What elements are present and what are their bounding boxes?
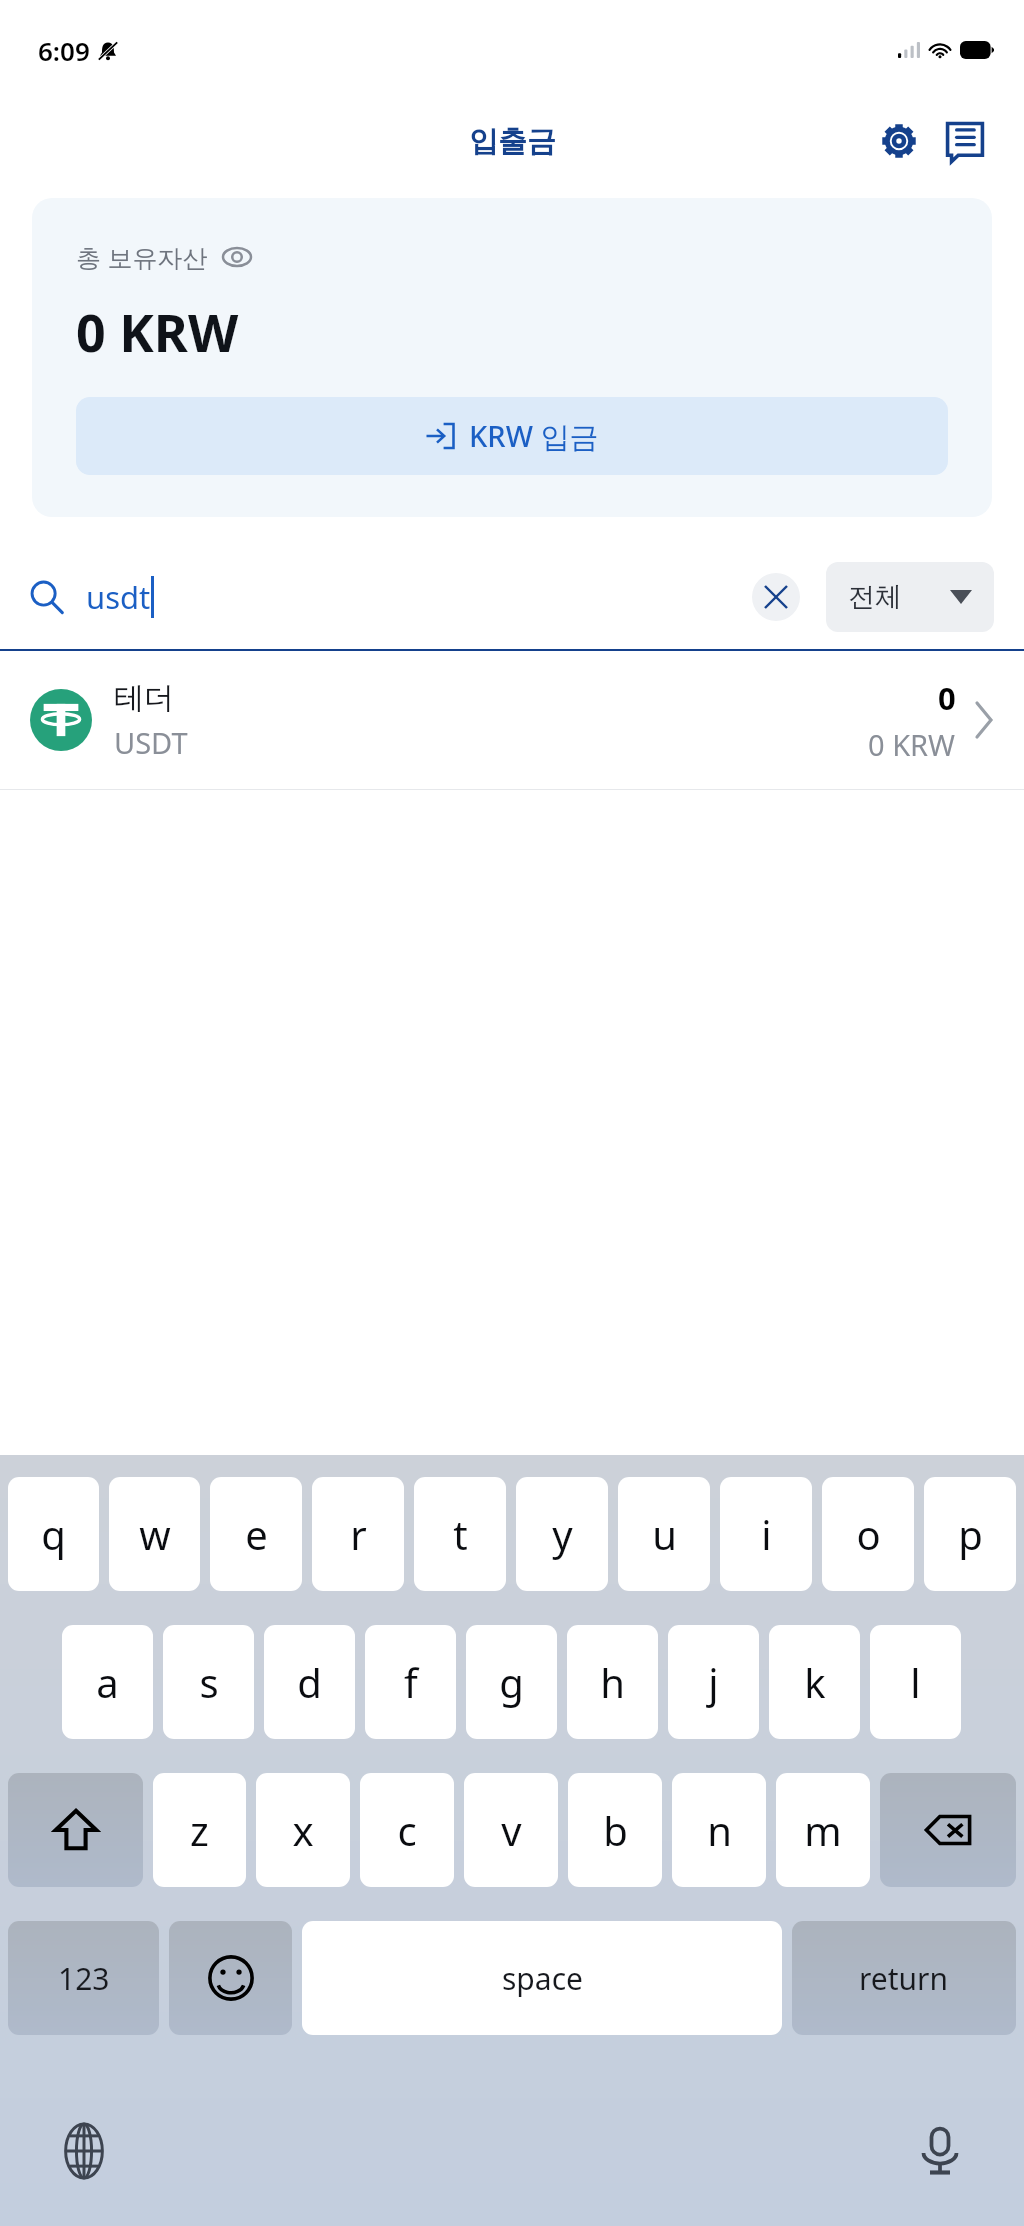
button[interactable]: Dictation [900, 2111, 980, 2191]
button[interactable]: Settings [868, 110, 930, 172]
staticText: w [139, 1507, 171, 1561]
button[interactable]: f [365, 1625, 456, 1739]
button[interactable]: Toggle balance visibility [220, 240, 254, 274]
button[interactable]: u [618, 1477, 710, 1591]
button[interactable]: i [720, 1477, 812, 1591]
staticText: 0 KRW [868, 725, 956, 764]
staticText: a [96, 1655, 119, 1709]
button[interactable]: 전체 [826, 562, 994, 632]
button[interactable]: c [360, 1773, 454, 1887]
staticText: 6:09 [38, 33, 90, 68]
button[interactable]: usdt [30, 545, 752, 649]
button[interactable]: space [302, 1921, 782, 2035]
staticText: 123 [58, 1958, 110, 1999]
staticText: q [41, 1507, 66, 1561]
staticText: v [501, 1803, 522, 1857]
button[interactable]: z [153, 1773, 246, 1887]
staticText: o [856, 1507, 881, 1561]
button[interactable]: h [567, 1625, 658, 1739]
button[interactable]: 123 [8, 1921, 159, 2035]
button[interactable]: j [668, 1625, 759, 1739]
button[interactable]: l [870, 1625, 961, 1739]
staticText: f [404, 1655, 418, 1709]
button[interactable]: 테더 [0, 651, 1024, 789]
staticText: 0 KRW [76, 296, 239, 367]
staticText: n [707, 1803, 732, 1857]
staticText: x [292, 1803, 314, 1857]
button[interactable]: g [466, 1625, 557, 1739]
staticText: y [552, 1507, 573, 1561]
button[interactable]: Chat [934, 110, 996, 172]
button[interactable]: a [62, 1625, 153, 1739]
button[interactable]: o [822, 1477, 914, 1591]
staticText: z [190, 1803, 209, 1857]
staticText: usdt [86, 576, 151, 618]
button[interactable]: n [672, 1773, 766, 1887]
staticText: i [761, 1507, 772, 1561]
button[interactable]: Emoji [169, 1921, 292, 2035]
button[interactable]: k [769, 1625, 860, 1739]
staticText: r [350, 1507, 367, 1561]
staticText: b [603, 1803, 628, 1857]
button[interactable]: Shift [8, 1773, 143, 1887]
staticText: u [652, 1507, 677, 1561]
button[interactable]: KRW 입금 [76, 397, 948, 475]
staticText: g [499, 1655, 524, 1709]
button[interactable]: e [210, 1477, 302, 1591]
staticText: KRW 입금 [469, 416, 599, 456]
button[interactable]: s [163, 1625, 254, 1739]
button[interactable]: y [516, 1477, 608, 1591]
button[interactable]: t [414, 1477, 506, 1591]
staticText: c [397, 1803, 417, 1857]
staticText: 입출금 [469, 123, 556, 160]
staticText: h [600, 1655, 625, 1709]
button[interactable]: x [256, 1773, 350, 1887]
staticText: t [453, 1507, 468, 1561]
button[interactable]: r [312, 1477, 404, 1591]
button[interactable]: q [8, 1477, 99, 1591]
staticText: 전체 [848, 580, 902, 614]
staticText: l [910, 1655, 921, 1709]
button[interactable]: m [776, 1773, 870, 1887]
staticText: 테더 [114, 679, 174, 717]
staticText: return [859, 1958, 949, 1999]
staticText: USDT [114, 723, 188, 762]
staticText: d [297, 1655, 322, 1709]
button[interactable]: d [264, 1625, 355, 1739]
staticText: s [199, 1655, 219, 1709]
button[interactable]: v [464, 1773, 558, 1887]
button[interactable]: p [924, 1477, 1016, 1591]
staticText: k [804, 1655, 826, 1709]
button[interactable]: Clear search [752, 573, 800, 621]
staticText: space [502, 1958, 583, 1999]
button[interactable]: Change keyboard language [44, 2111, 124, 2191]
staticText: j [708, 1655, 719, 1709]
staticText: 총 보유자산 [76, 240, 208, 274]
button[interactable]: return [792, 1921, 1016, 2035]
staticText: m [804, 1803, 842, 1857]
staticText: e [245, 1507, 268, 1561]
button[interactable]: Backspace [880, 1773, 1016, 1887]
button[interactable]: b [568, 1773, 662, 1887]
staticText: 0 [938, 677, 956, 719]
staticText: p [958, 1507, 983, 1561]
button[interactable]: w [109, 1477, 200, 1591]
